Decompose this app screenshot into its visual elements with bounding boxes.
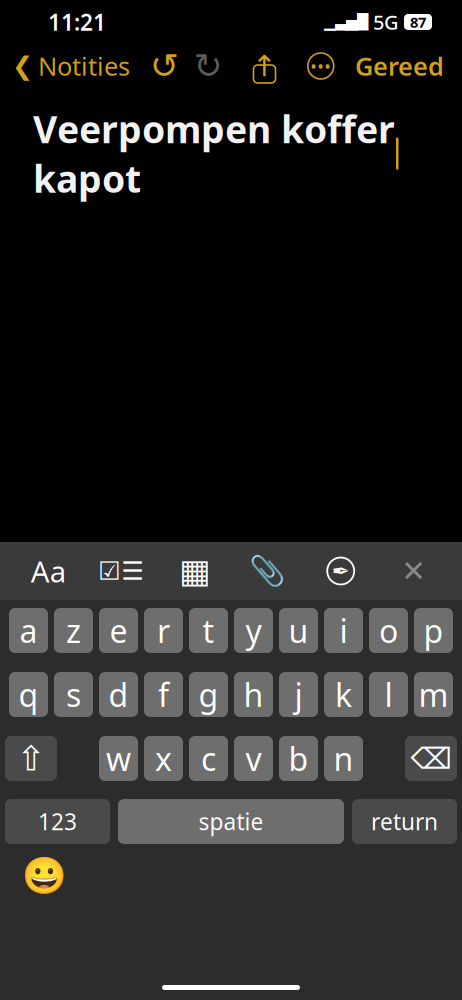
- button[interactable]: Undo: [142, 47, 186, 85]
- button[interactable]: ❮: [0, 41, 130, 91]
- staticText: 11:21: [48, 7, 106, 37]
- staticText: t: [202, 609, 214, 652]
- button[interactable]: Table: [169, 551, 219, 591]
- button[interactable]: e: [99, 608, 138, 653]
- staticText: 📎: [249, 554, 286, 588]
- staticText: ☑︎☰: [98, 557, 144, 585]
- button[interactable]: More: [299, 47, 343, 85]
- staticText: Aa: [31, 551, 66, 590]
- button[interactable]: y: [234, 608, 273, 653]
- staticText: Gereed: [355, 49, 444, 83]
- staticText: ⌫: [410, 742, 451, 775]
- staticText: ▁▃▅█: [324, 14, 368, 30]
- staticText: l: [384, 673, 392, 716]
- button[interactable]: q: [9, 672, 48, 717]
- button[interactable]: j: [279, 672, 318, 717]
- staticText: •••: [310, 54, 331, 77]
- staticText: y: [245, 609, 261, 652]
- staticText: n: [333, 737, 353, 780]
- staticText: r: [157, 609, 170, 652]
- staticText: g: [198, 673, 218, 716]
- staticText: ↺: [150, 46, 179, 86]
- button[interactable]: Checklist: [96, 551, 146, 591]
- staticText: x: [155, 737, 172, 780]
- staticText: c: [201, 737, 216, 780]
- button[interactable]: s: [54, 672, 93, 717]
- staticText: ❮: [12, 52, 33, 80]
- button[interactable]: d: [99, 672, 138, 717]
- button[interactable]: v: [234, 736, 273, 781]
- staticText: i: [339, 609, 347, 652]
- staticText: Notities: [38, 49, 130, 83]
- button[interactable]: Close keyboard: [389, 551, 439, 591]
- staticText: q: [18, 673, 38, 716]
- staticText: ↑: [252, 49, 277, 83]
- button[interactable]: u: [279, 608, 318, 653]
- staticText: d: [108, 673, 128, 716]
- button[interactable]: Emoji: [22, 856, 66, 896]
- button[interactable]: Markup: [316, 551, 366, 591]
- button[interactable]: i: [324, 608, 363, 653]
- button[interactable]: h: [234, 672, 273, 717]
- button[interactable]: o: [369, 608, 408, 653]
- staticText: ✕: [401, 554, 426, 588]
- button[interactable]: t: [189, 608, 228, 653]
- button[interactable]: Delete: [405, 736, 457, 781]
- button[interactable]: 123: [5, 799, 110, 844]
- button[interactable]: g: [189, 672, 228, 717]
- button[interactable]: Share: [242, 47, 286, 85]
- button[interactable]: n: [324, 736, 363, 781]
- staticText: 5G: [373, 9, 399, 35]
- button[interactable]: spatie: [118, 799, 344, 844]
- staticText: b: [288, 737, 308, 780]
- staticText: s: [66, 673, 81, 716]
- button[interactable]: return: [352, 799, 457, 844]
- button[interactable]: c: [189, 736, 228, 781]
- staticText: return: [371, 806, 438, 836]
- staticText: ✒︎: [332, 559, 350, 583]
- staticText: e: [109, 609, 127, 652]
- button[interactable]: Gereed: [355, 41, 462, 91]
- button[interactable]: p: [414, 608, 453, 653]
- button[interactable]: f: [144, 672, 183, 717]
- staticText: p: [423, 609, 443, 652]
- staticText: o: [379, 609, 398, 652]
- staticText: f: [158, 673, 169, 716]
- button[interactable]: Format: [23, 551, 73, 591]
- staticText: 😀: [21, 855, 66, 896]
- staticText: ⇧: [16, 739, 45, 778]
- staticText: m: [418, 673, 448, 716]
- button[interactable]: Shift: [5, 736, 57, 781]
- button[interactable]: z: [54, 608, 93, 653]
- staticText: h: [243, 673, 263, 716]
- button[interactable]: w: [99, 736, 138, 781]
- staticText: 87: [410, 12, 426, 32]
- staticText: ▦: [179, 552, 210, 590]
- staticText: ↻: [194, 46, 223, 86]
- button[interactable]: b: [279, 736, 318, 781]
- staticText: Veerpompen koffer kapot: [33, 104, 395, 203]
- button[interactable]: Redo: [186, 47, 230, 85]
- staticText: 123: [38, 806, 77, 836]
- button[interactable]: x: [144, 736, 183, 781]
- button[interactable]: r: [144, 608, 183, 653]
- staticText: u: [288, 609, 308, 652]
- staticText: z: [66, 609, 81, 652]
- button[interactable]: l: [369, 672, 408, 717]
- staticText: k: [335, 673, 352, 716]
- button[interactable]: Attach: [243, 551, 293, 591]
- button[interactable]: k: [324, 672, 363, 717]
- staticText: j: [294, 673, 302, 716]
- staticText: a: [19, 609, 37, 652]
- button[interactable]: a: [9, 608, 48, 653]
- staticText: v: [245, 737, 261, 780]
- staticText: w: [106, 737, 131, 780]
- button[interactable]: m: [414, 672, 453, 717]
- staticText: spatie: [198, 806, 263, 836]
